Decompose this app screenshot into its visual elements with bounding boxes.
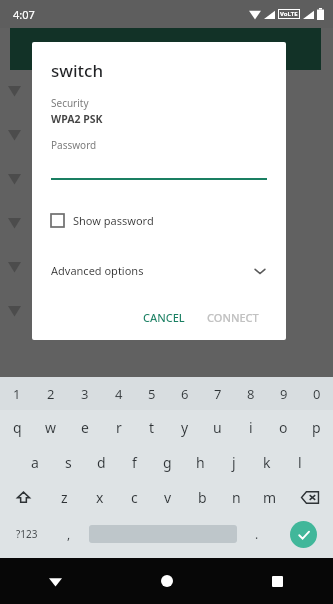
staticText: Advanced options bbox=[51, 263, 144, 278]
button[interactable]: i bbox=[234, 410, 267, 445]
staticText: p bbox=[312, 418, 321, 437]
staticText: CONNECT bbox=[207, 310, 259, 325]
button[interactable]: f bbox=[118, 445, 151, 480]
button[interactable]: x bbox=[82, 480, 117, 515]
button[interactable]: 1 bbox=[0, 377, 34, 410]
button[interactable]: 8 bbox=[234, 377, 267, 410]
staticText: switch bbox=[51, 59, 104, 82]
staticText: WPA2 PSK bbox=[51, 112, 103, 126]
button[interactable]: a bbox=[18, 445, 52, 480]
button[interactable]: r bbox=[102, 410, 135, 445]
button[interactable]: l bbox=[283, 445, 316, 480]
staticText: y bbox=[181, 418, 189, 437]
staticText: 4:07 bbox=[13, 7, 35, 22]
button[interactable]: p bbox=[300, 410, 333, 445]
staticText: 8 bbox=[247, 385, 255, 403]
button[interactable]: t bbox=[135, 410, 168, 445]
staticText: m bbox=[263, 488, 277, 507]
button[interactable]: q bbox=[0, 410, 34, 445]
staticText: e bbox=[81, 418, 89, 437]
button[interactable]: s bbox=[52, 445, 85, 480]
button[interactable]: Advanced options bbox=[51, 260, 267, 281]
button[interactable]: 7 bbox=[201, 377, 234, 410]
staticText: . bbox=[255, 526, 259, 542]
staticText: 6 bbox=[181, 385, 189, 403]
staticText: z bbox=[61, 488, 68, 507]
button[interactable]: e bbox=[68, 410, 102, 445]
staticText: 5 bbox=[148, 385, 156, 403]
staticText: s bbox=[65, 453, 72, 472]
staticText: k bbox=[263, 453, 271, 472]
staticText: 1 bbox=[13, 385, 21, 403]
button[interactable]: u bbox=[201, 410, 234, 445]
staticText: t bbox=[149, 418, 155, 437]
staticText: CANCEL bbox=[143, 310, 185, 325]
button[interactable]: 6 bbox=[168, 377, 201, 410]
staticText: q bbox=[13, 418, 22, 437]
button[interactable]: h bbox=[184, 445, 217, 480]
staticText: 9 bbox=[280, 385, 288, 403]
button[interactable]: Shift bbox=[0, 480, 47, 515]
button[interactable]: k bbox=[250, 445, 283, 480]
staticText: r bbox=[116, 418, 122, 437]
button[interactable]: z bbox=[47, 480, 82, 515]
staticText: 0 bbox=[313, 385, 321, 403]
button[interactable]: Home bbox=[111, 558, 222, 604]
button[interactable]: Enter bbox=[290, 521, 317, 548]
staticText: 7 bbox=[214, 385, 222, 403]
button[interactable]: 9 bbox=[267, 377, 300, 410]
staticText: v bbox=[164, 488, 172, 507]
button[interactable]: j bbox=[217, 445, 250, 480]
button[interactable]: v bbox=[151, 480, 185, 515]
staticText: d bbox=[97, 453, 106, 472]
staticText: Show password bbox=[73, 213, 154, 228]
button[interactable]: 4 bbox=[102, 377, 135, 410]
button[interactable]: 5 bbox=[135, 377, 168, 410]
staticText: 2 bbox=[47, 385, 55, 403]
staticText: l bbox=[298, 453, 302, 472]
button[interactable]: Backspace bbox=[287, 480, 333, 515]
staticText: h bbox=[196, 453, 205, 472]
staticText: ?123 bbox=[16, 527, 38, 541]
button[interactable]: 0 bbox=[300, 377, 333, 410]
staticText: u bbox=[213, 418, 222, 437]
button[interactable]: y bbox=[168, 410, 201, 445]
button[interactable]: o bbox=[267, 410, 300, 445]
staticText: o bbox=[279, 418, 288, 437]
staticText: n bbox=[232, 488, 241, 507]
staticText: j bbox=[232, 453, 236, 472]
button[interactable]: m bbox=[253, 480, 287, 515]
button[interactable]: CANCEL bbox=[135, 304, 193, 331]
button[interactable]: g bbox=[151, 445, 184, 480]
staticText: g bbox=[163, 453, 172, 472]
button[interactable]: , bbox=[53, 515, 85, 553]
button[interactable]: 2 bbox=[34, 377, 68, 410]
staticText: b bbox=[198, 488, 207, 507]
staticText: w bbox=[45, 418, 57, 437]
button[interactable]: ?123 bbox=[0, 515, 53, 553]
button[interactable]: w bbox=[34, 410, 68, 445]
staticText: 4 bbox=[115, 385, 123, 403]
button[interactable]: c bbox=[117, 480, 151, 515]
staticText: c bbox=[131, 488, 138, 507]
button[interactable]: Back bbox=[0, 558, 111, 604]
staticText: x bbox=[96, 488, 104, 507]
staticText: i bbox=[249, 418, 253, 437]
staticText: f bbox=[132, 453, 137, 472]
button[interactable]: Recents bbox=[222, 558, 333, 604]
staticText: 3 bbox=[81, 385, 89, 403]
staticText: , bbox=[67, 526, 71, 542]
button[interactable]: b bbox=[185, 480, 219, 515]
button[interactable]: Show password bbox=[51, 210, 267, 231]
staticText: a bbox=[31, 453, 39, 472]
staticText: VoLTE bbox=[280, 10, 298, 18]
staticText: Security bbox=[51, 96, 89, 110]
button[interactable]: 3 bbox=[68, 377, 102, 410]
staticText: Password bbox=[51, 138, 97, 152]
button[interactable]: CONNECT bbox=[199, 304, 267, 331]
button[interactable]: n bbox=[219, 480, 253, 515]
button[interactable]: d bbox=[85, 445, 118, 480]
button[interactable]: . bbox=[241, 515, 273, 553]
